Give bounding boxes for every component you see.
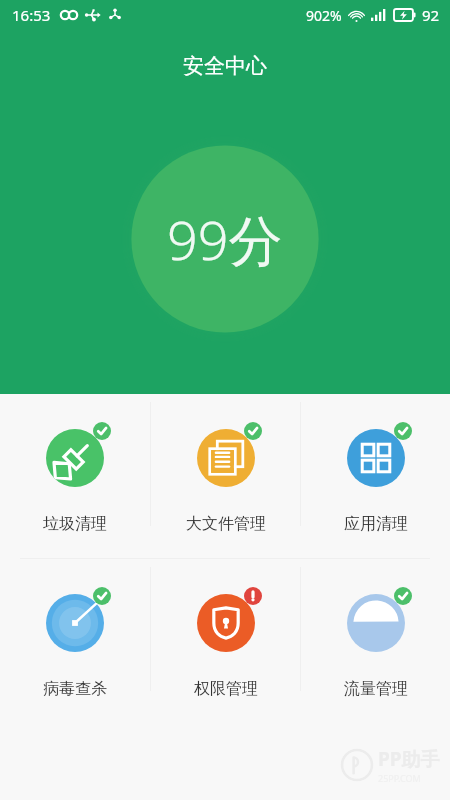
button[interactable]: 病毒查杀 bbox=[0, 559, 150, 699]
staticText: 安全中心 bbox=[183, 53, 267, 79]
button[interactable]: 99分 bbox=[121, 135, 329, 343]
other: 大文件管理 bbox=[197, 429, 255, 487]
staticText: 权限管理 bbox=[194, 679, 258, 699]
button[interactable]: 权限管理 bbox=[151, 559, 300, 699]
button[interactable]: 流量管理 bbox=[301, 559, 450, 699]
staticText: 垃圾清理 bbox=[43, 514, 107, 534]
staticText: 应用清理 bbox=[344, 514, 408, 534]
staticText: 902% bbox=[306, 6, 342, 25]
other: 流量管理 bbox=[347, 594, 405, 652]
staticText: 流量管理 bbox=[344, 679, 408, 699]
button[interactable]: 应用清理 bbox=[301, 394, 450, 534]
staticText: 92 bbox=[422, 5, 440, 25]
staticText: 99分 bbox=[167, 202, 283, 276]
staticText: 病毒查杀 bbox=[43, 679, 107, 699]
other: 应用清理 bbox=[347, 429, 405, 487]
other: 病毒查杀 bbox=[46, 594, 104, 652]
button[interactable]: 大文件管理 bbox=[151, 394, 300, 534]
other: 权限管理 bbox=[197, 594, 255, 652]
staticText: PP助手 bbox=[378, 746, 440, 772]
staticText: 16:53 bbox=[12, 5, 51, 25]
other: 垃圾清理 bbox=[46, 429, 104, 487]
button[interactable]: 垃圾清理 bbox=[0, 394, 150, 534]
staticText: 大文件管理 bbox=[186, 514, 266, 534]
